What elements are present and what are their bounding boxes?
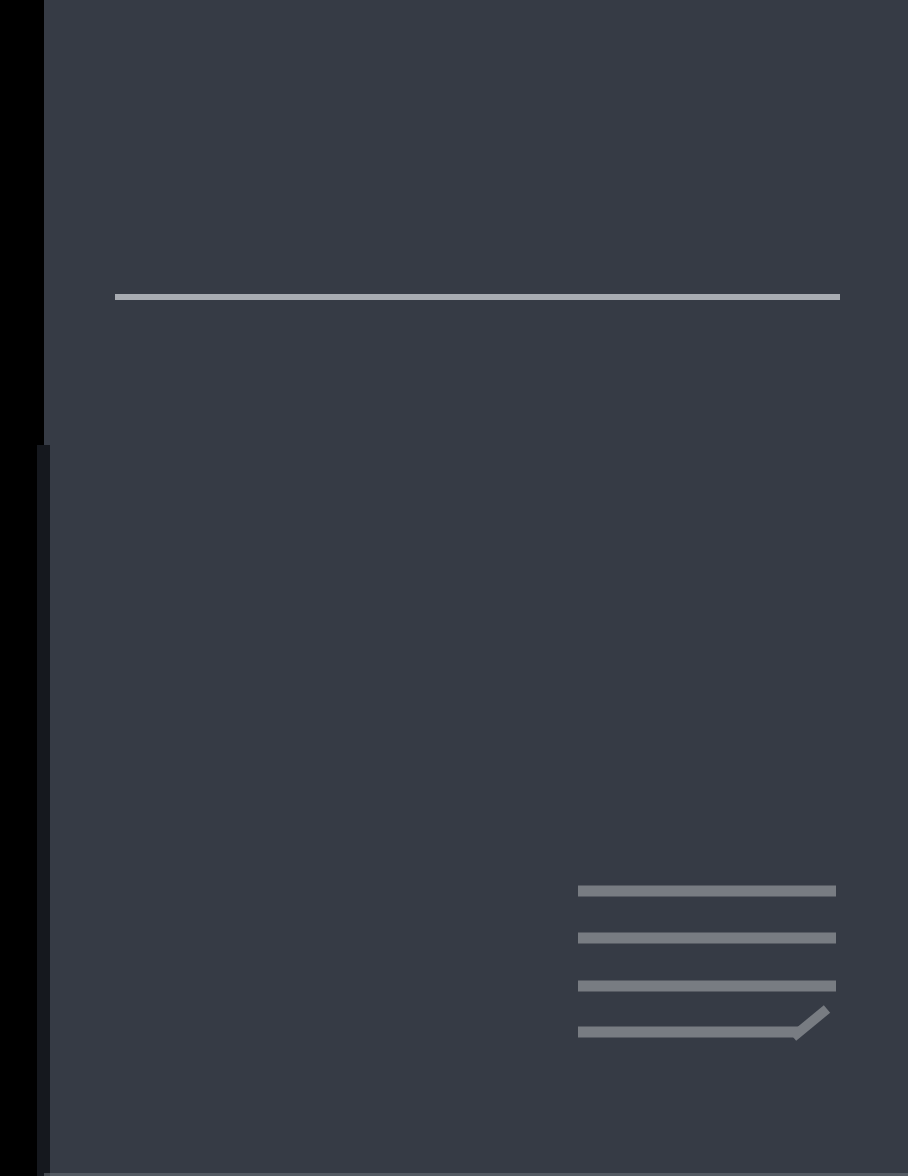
button[interactable]: Edit list <box>0 0 908 1176</box>
button[interactable]: Divider <box>115 270 840 324</box>
